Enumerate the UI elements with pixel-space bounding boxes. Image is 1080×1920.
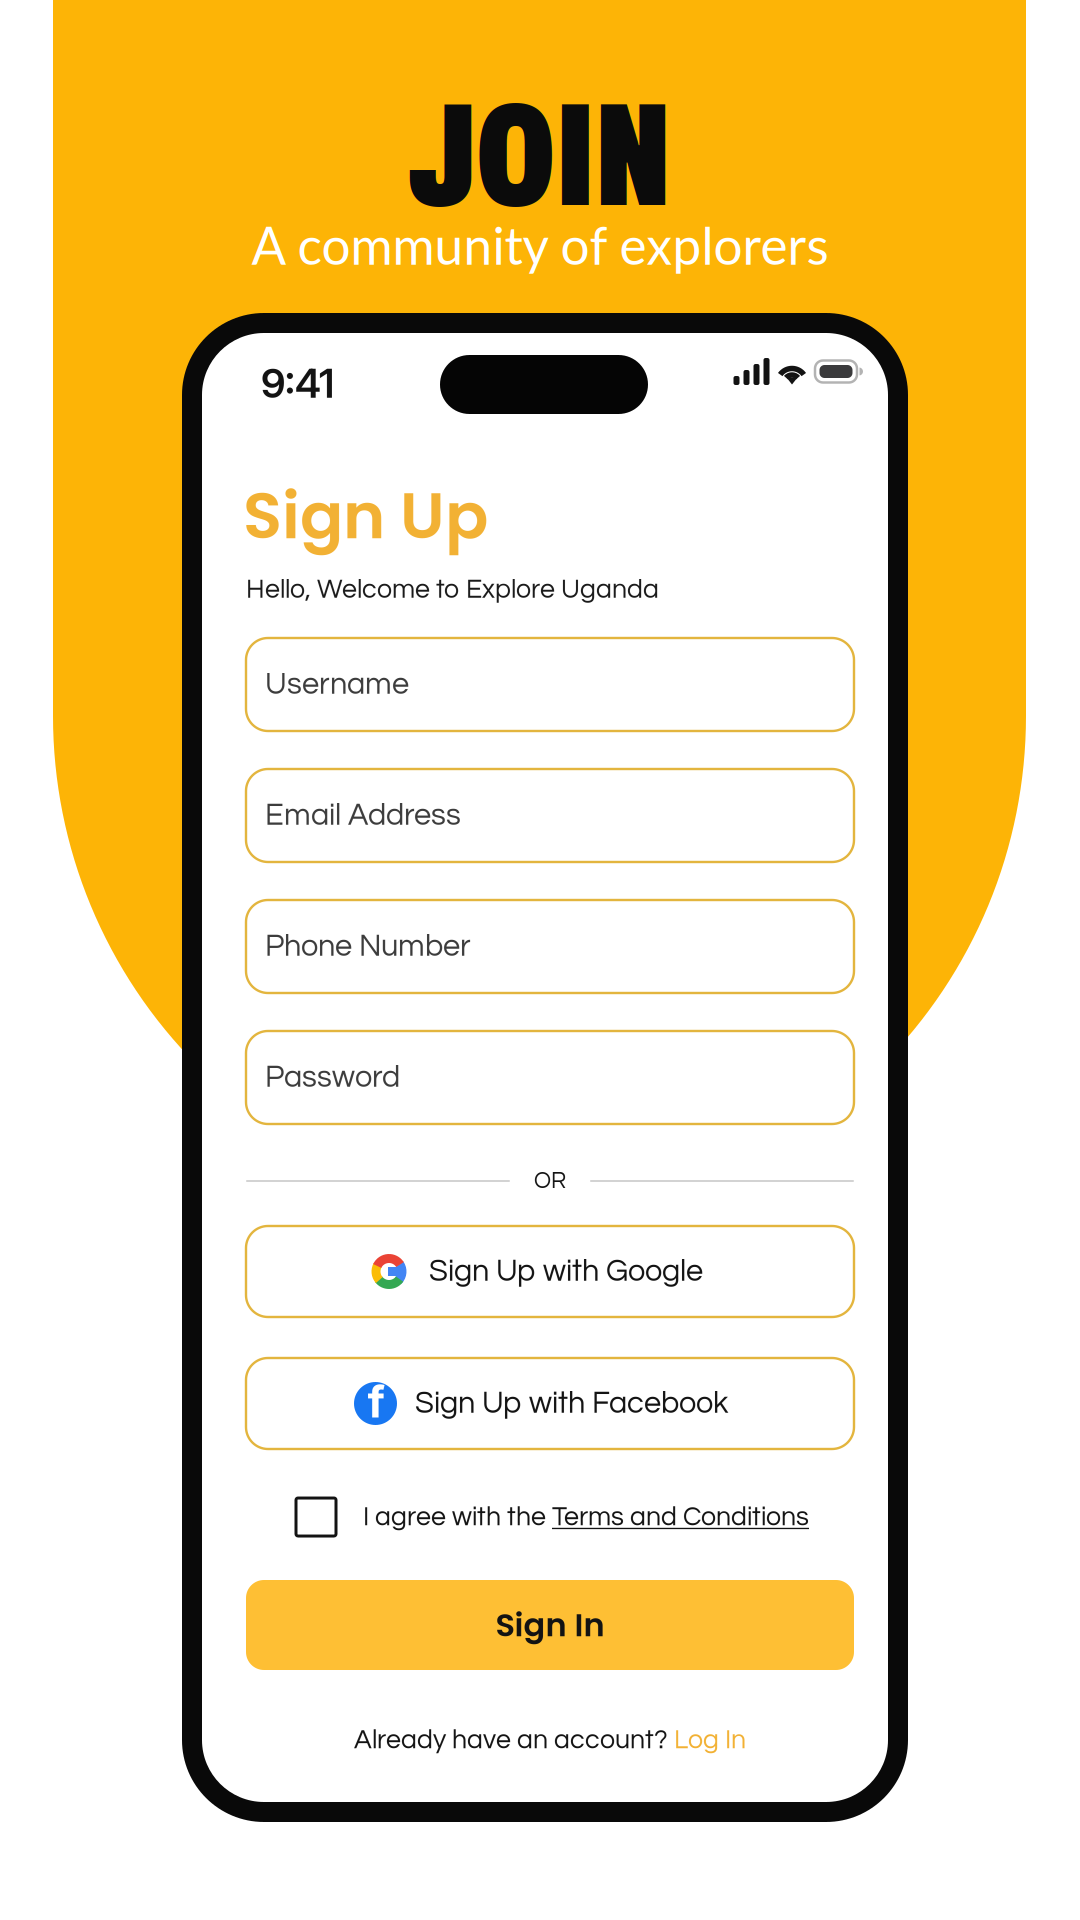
button[interactable]: Sign Up with Google (246, 1226, 854, 1317)
staticText: Password (265, 1062, 400, 1093)
staticText: Username (265, 669, 409, 700)
staticText: Hello, Welcome to Explore Uganda (246, 576, 659, 603)
staticText: Terms and Conditions (552, 1503, 809, 1531)
staticText: Sign Up (243, 471, 488, 561)
staticText: Sign In (495, 1603, 604, 1647)
staticText: Sign Up with Google (429, 1256, 703, 1287)
staticText: JOIN (409, 76, 671, 236)
staticText: Log In (674, 1726, 746, 1754)
staticText: OR (534, 1169, 566, 1193)
button[interactable]: Log In (674, 1726, 746, 1754)
button[interactable]: Username (246, 638, 854, 731)
staticText: Email Address (265, 800, 461, 831)
staticText: Phone Number (265, 931, 471, 962)
button[interactable]: f (246, 1358, 854, 1449)
button[interactable]: Sign In (246, 1580, 854, 1670)
button[interactable]: Password (246, 1031, 854, 1124)
staticText: f (367, 1375, 385, 1428)
staticText: Already have an account? (354, 1726, 674, 1754)
button[interactable]: Email Address (246, 769, 854, 862)
staticText: I agree with the (363, 1503, 552, 1531)
staticText: 9:41 (261, 359, 334, 407)
staticText: Sign Up with Facebook (415, 1388, 728, 1419)
button[interactable]: Phone Number (246, 900, 854, 993)
staticText: A community of explorers (251, 214, 828, 276)
button[interactable]: I agree with the (246, 1493, 854, 1541)
